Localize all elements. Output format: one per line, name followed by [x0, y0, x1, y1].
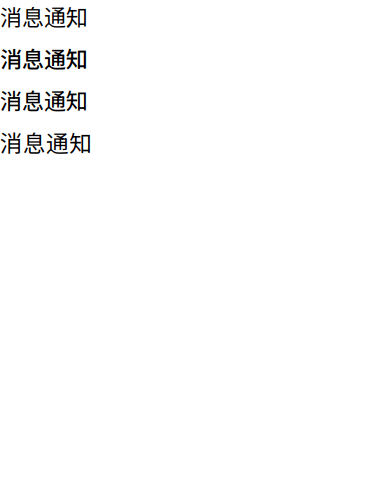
staticText: 消息通知 — [0, 42, 88, 74]
staticText: 消息通知 — [0, 126, 92, 158]
staticText: 消息通知 — [0, 0, 88, 32]
staticText: 消息通知 — [0, 84, 88, 116]
